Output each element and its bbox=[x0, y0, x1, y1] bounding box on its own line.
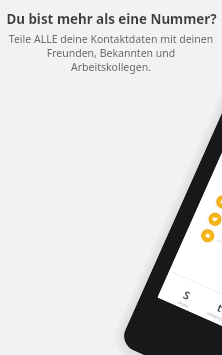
staticText: S bbox=[181, 287, 194, 303]
staticText: Teile ALLE deine Kontaktdaten mit deinen… bbox=[8, 32, 214, 74]
staticText: Du bist mehr als eine Nummer? bbox=[6, 10, 217, 28]
staticText: skype bbox=[177, 300, 189, 309]
staticText: telegram bbox=[206, 310, 222, 322]
staticText: t bbox=[215, 300, 222, 315]
